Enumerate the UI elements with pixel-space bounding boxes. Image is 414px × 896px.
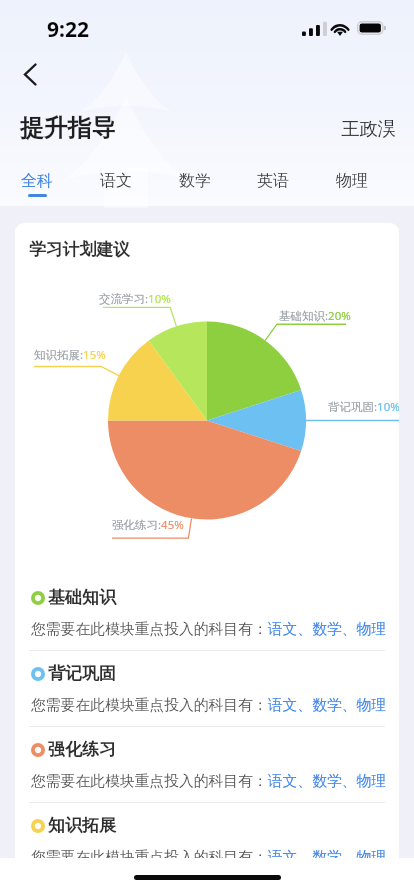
staticText: 您需要在此模块重点投入的科目有：语文、数学、物理 — [31, 696, 387, 715]
staticText: 知识拓展:15% — [34, 347, 106, 363]
staticText: 英语 — [257, 171, 289, 191]
button[interactable]: 背记巩固 — [15, 651, 399, 727]
button[interactable]: 知识拓展 — [15, 803, 399, 879]
staticText: 全科 — [21, 171, 53, 191]
staticText: 您需要在此模块重点投入的科目有：语文、数学、物理 — [31, 620, 387, 639]
button[interactable]: 全科 — [21, 171, 53, 197]
staticText: 物理 — [336, 171, 368, 191]
staticText: 数学 — [179, 171, 211, 191]
button[interactable]: Back — [0, 44, 56, 92]
staticText: 9:22 — [47, 15, 89, 44]
staticText: 您需要在此模块重点投入的科目有：语文、数学、物理 — [31, 772, 387, 791]
button[interactable]: 物理 — [336, 171, 368, 197]
staticText: 王政淏 — [341, 117, 397, 140]
staticText: 背记巩固 — [48, 663, 116, 684]
staticText: 知识拓展 — [48, 815, 116, 836]
staticText: 强化练习 — [48, 739, 116, 760]
staticText: 交流学习:10% — [99, 291, 171, 307]
staticText: 基础知识:20% — [279, 308, 351, 324]
button[interactable]: 语文 — [100, 171, 132, 197]
staticText: 背记巩固:10% — [328, 399, 399, 415]
staticText: 提升指导 — [20, 113, 116, 143]
staticText: 语文 — [100, 171, 132, 191]
staticText: 学习计划建议 — [29, 239, 130, 260]
button[interactable]: 基础知识 — [15, 575, 399, 651]
staticText: 基础知识 — [48, 587, 116, 608]
button[interactable]: 英语 — [257, 171, 289, 197]
button[interactable]: 强化练习 — [15, 727, 399, 803]
button[interactable]: 数学 — [179, 171, 211, 197]
staticText: 强化练习:45% — [112, 517, 184, 533]
staticText: 您需要在此模块重点投入的科目有：语文、数学、物理 — [31, 848, 387, 867]
